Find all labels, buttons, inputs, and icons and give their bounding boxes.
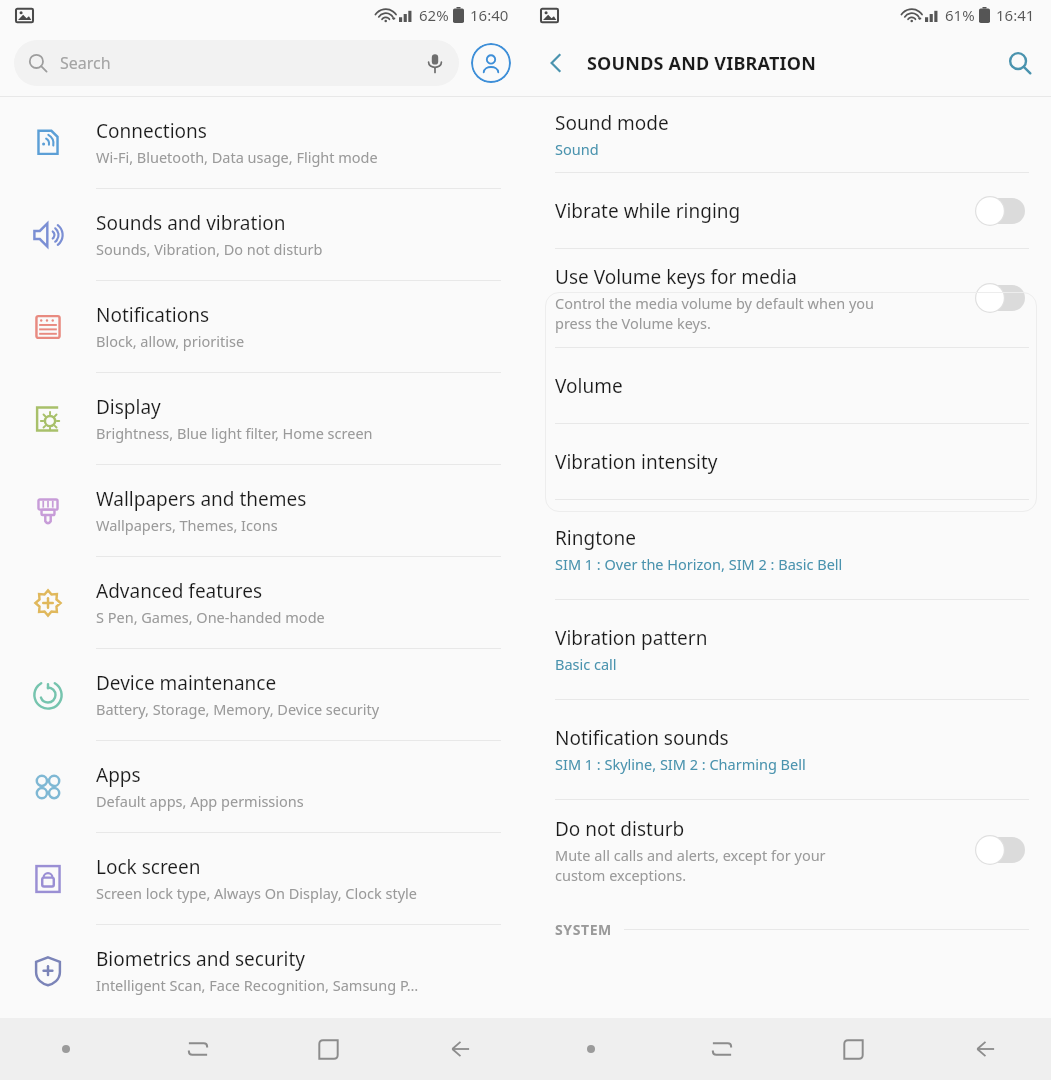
staticText: Do not disturb	[555, 816, 685, 842]
button[interactable]: Hide navigation bar	[0, 1018, 132, 1080]
staticText: Display	[96, 394, 161, 420]
staticText: Brightness, Blue light filter, Home scre…	[96, 423, 373, 443]
staticText: Basic call	[555, 654, 617, 674]
staticText: Control the media volume by default when…	[555, 293, 875, 333]
staticText: Lock screen	[96, 854, 201, 880]
staticText: Vibration intensity	[555, 449, 718, 475]
staticText: Vibration pattern	[555, 625, 708, 651]
staticText: Notifications	[96, 302, 210, 328]
staticText: Connections	[96, 118, 207, 144]
button[interactable]: Connections	[0, 97, 525, 188]
staticText: Sound mode	[555, 110, 669, 136]
staticText: Sounds, Vibration, Do not disturb	[96, 239, 323, 259]
button[interactable]: Notification sounds	[525, 700, 1051, 799]
button[interactable]: Lock screen	[0, 833, 525, 924]
staticText: Use Volume keys for media	[555, 264, 797, 290]
staticText: Battery, Storage, Memory, Device securit…	[96, 699, 380, 719]
staticText: SOUNDS AND VIBRATION	[587, 51, 817, 76]
staticText: Wallpapers, Themes, Icons	[96, 515, 278, 535]
staticText: SIM 1 : Skyline, SIM 2 : Charming Bell	[555, 754, 806, 774]
staticText: Vibrate while ringing	[555, 198, 741, 224]
button[interactable]: Hide navigation bar	[525, 1018, 656, 1080]
staticText: Mute all calls and alerts, except for yo…	[555, 845, 826, 885]
button[interactable]: Vibrate while ringing	[525, 173, 1051, 248]
button[interactable]: Sounds and vibration	[0, 189, 525, 280]
button[interactable]: Apps	[0, 741, 525, 832]
button[interactable]: Recents	[132, 1018, 263, 1080]
button[interactable]: Back	[525, 30, 587, 96]
button[interactable]: Sound mode	[525, 97, 1051, 172]
button[interactable]: Back	[394, 1018, 525, 1080]
button[interactable]: Do not disturb toggle	[973, 833, 1029, 867]
button[interactable]: Recents	[656, 1018, 787, 1080]
button[interactable]: Notifications	[0, 281, 525, 372]
button[interactable]: Do not disturb	[525, 800, 1051, 900]
staticText: Sound	[555, 139, 599, 159]
button[interactable]: Back	[919, 1018, 1051, 1080]
button[interactable]: Account	[471, 43, 511, 83]
button[interactable]: Ringtone	[525, 500, 1051, 599]
staticText: Advanced features	[96, 578, 263, 604]
button[interactable]: Device maintenance	[0, 649, 525, 740]
staticText: 61%	[945, 5, 975, 25]
staticText: Search	[60, 52, 111, 74]
button[interactable]: Display	[0, 373, 525, 464]
staticText: 62%	[419, 5, 449, 25]
staticText: Sounds and vibration	[96, 210, 286, 236]
button[interactable]: Use Volume keys for media toggle	[973, 281, 1029, 315]
button[interactable]: Search	[14, 40, 459, 86]
button[interactable]: Advanced features	[0, 557, 525, 648]
staticText: Screen lock type, Always On Display, Clo…	[96, 883, 417, 903]
button[interactable]: Wallpapers and themes	[0, 465, 525, 556]
button[interactable]: Home	[263, 1018, 394, 1080]
staticText: 16:41	[996, 5, 1035, 25]
staticText: Apps	[96, 762, 141, 788]
button[interactable]: Use Volume keys for media	[525, 249, 1051, 347]
staticText: Biometrics and security	[96, 946, 306, 972]
button[interactable]: Volume	[525, 348, 1051, 423]
staticText: Default apps, App permissions	[96, 791, 304, 811]
button[interactable]: Vibration pattern	[525, 600, 1051, 699]
staticText: Device maintenance	[96, 670, 277, 696]
staticText: 16:40	[470, 5, 509, 25]
staticText: Wi-Fi, Bluetooth, Data usage, Flight mod…	[96, 147, 378, 167]
button[interactable]: Search	[989, 30, 1051, 96]
staticText: SIM 1 : Over the Horizon, SIM 2 : Basic …	[555, 554, 843, 574]
staticText: Ringtone	[555, 525, 636, 551]
staticText: Notification sounds	[555, 725, 729, 751]
button[interactable]: Vibration intensity	[525, 424, 1051, 499]
button[interactable]: Home	[787, 1018, 919, 1080]
staticText: Wallpapers and themes	[96, 486, 307, 512]
staticText: S Pen, Games, One-handed mode	[96, 607, 325, 627]
staticText: Intelligent Scan, Face Recognition, Sams…	[96, 975, 419, 995]
button[interactable]: Biometrics and security	[0, 925, 525, 1016]
button[interactable]: Vibrate while ringing toggle	[973, 194, 1029, 228]
staticText: SYSTEM	[555, 920, 612, 939]
staticText: Block, allow, prioritise	[96, 331, 245, 351]
staticText: Volume	[555, 373, 623, 399]
